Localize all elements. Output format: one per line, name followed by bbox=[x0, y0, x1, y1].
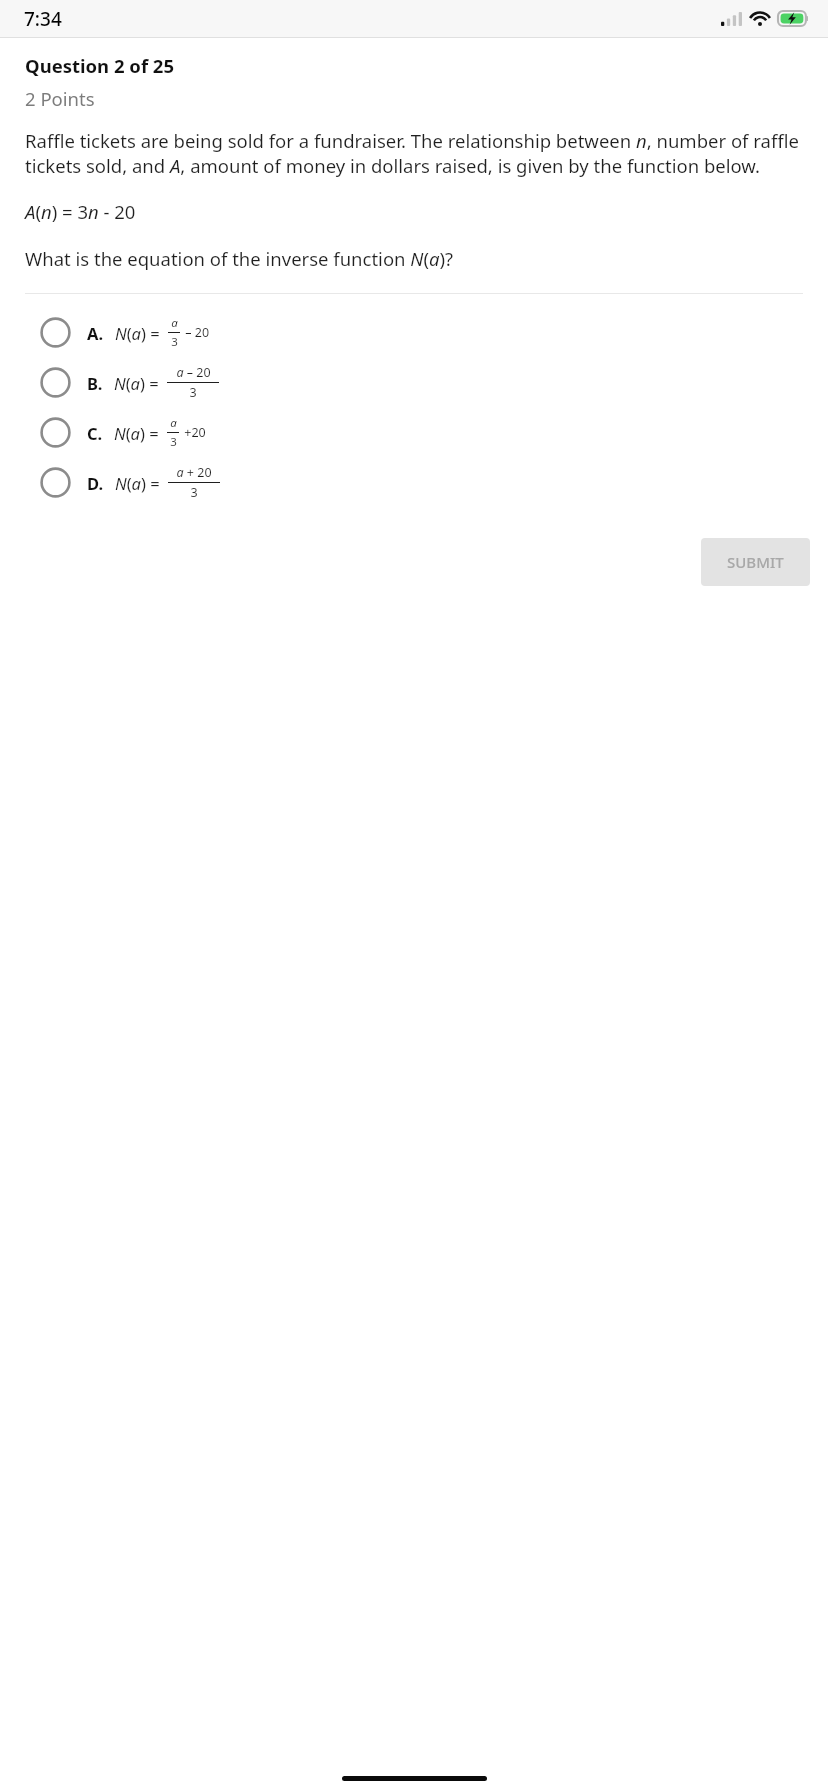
staticText: A. bbox=[87, 322, 104, 344]
other: Wi-Fi bbox=[750, 11, 770, 26]
staticText: +20 bbox=[181, 424, 206, 441]
staticText: a + 20 bbox=[176, 464, 212, 481]
staticText: 3 bbox=[189, 384, 197, 401]
staticText: B. bbox=[87, 372, 103, 394]
other: Cellular signal bbox=[721, 12, 742, 26]
staticText: SUBMIT bbox=[727, 552, 784, 572]
button[interactable]: C. bbox=[0, 408, 828, 457]
staticText: a – 20 bbox=[176, 364, 211, 381]
staticText: a bbox=[171, 315, 178, 331]
staticText: C. bbox=[87, 422, 103, 444]
staticText: Question 2 of 25 bbox=[25, 53, 175, 78]
staticText: 7:34 bbox=[24, 6, 62, 32]
staticText: N(a) = bbox=[114, 372, 159, 394]
staticText: N(a) = bbox=[115, 472, 160, 494]
staticText: a bbox=[170, 415, 177, 431]
staticText: – 20 bbox=[182, 324, 210, 341]
staticText: N(a) = bbox=[114, 422, 159, 444]
staticText: A(n) = 3n - 20 bbox=[25, 199, 136, 224]
other: Battery charging bbox=[778, 11, 809, 26]
staticText: Raffle tickets are being sold for a fund… bbox=[25, 128, 803, 179]
staticText: 3 bbox=[171, 334, 178, 350]
staticText: D. bbox=[87, 472, 104, 494]
staticText: N(a) = bbox=[115, 322, 160, 344]
staticText: 2 Points bbox=[25, 86, 95, 111]
staticText: What is the equation of the inverse func… bbox=[25, 246, 454, 271]
staticText: 3 bbox=[190, 484, 198, 501]
button[interactable]: B. bbox=[0, 357, 828, 408]
staticText: 3 bbox=[170, 434, 177, 450]
button[interactable]: D. bbox=[0, 457, 828, 508]
button[interactable]: SUBMIT bbox=[701, 538, 810, 586]
button[interactable]: A. bbox=[0, 308, 828, 357]
